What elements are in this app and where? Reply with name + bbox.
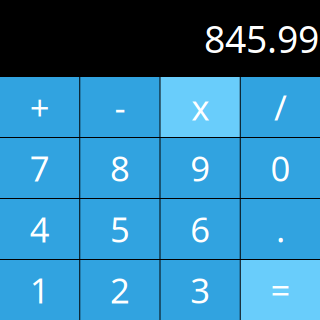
staticText: +: [30, 84, 50, 130]
staticText: 0: [270, 145, 290, 191]
button[interactable]: -: [80, 77, 159, 137]
staticText: .: [276, 206, 285, 252]
button[interactable]: =: [241, 260, 320, 320]
button[interactable]: 9: [160, 138, 240, 198]
button[interactable]: 0: [241, 138, 320, 198]
button[interactable]: 4: [0, 199, 79, 259]
button[interactable]: .: [241, 199, 320, 259]
button[interactable]: 2: [80, 260, 159, 320]
staticText: 5: [110, 206, 130, 252]
staticText: 2: [110, 267, 130, 313]
staticText: =: [270, 267, 290, 313]
button[interactable]: 8: [80, 138, 159, 198]
staticText: 6: [190, 206, 210, 252]
staticText: -: [114, 84, 125, 130]
staticText: 7: [30, 145, 50, 191]
staticText: x: [191, 84, 209, 130]
staticText: 3: [190, 267, 210, 313]
staticText: 1: [30, 267, 50, 313]
staticText: 8: [110, 145, 130, 191]
button[interactable]: /: [241, 77, 320, 137]
button[interactable]: x: [160, 77, 240, 137]
button[interactable]: 3: [160, 260, 240, 320]
staticText: 845.99: [204, 14, 319, 63]
staticText: 4: [30, 206, 50, 252]
button[interactable]: +: [0, 77, 79, 137]
staticText: 9: [190, 145, 210, 191]
button[interactable]: 7: [0, 138, 79, 198]
staticText: /: [274, 84, 287, 130]
button[interactable]: 1: [0, 260, 79, 320]
button[interactable]: 6: [160, 199, 240, 259]
button[interactable]: 5: [80, 199, 159, 259]
